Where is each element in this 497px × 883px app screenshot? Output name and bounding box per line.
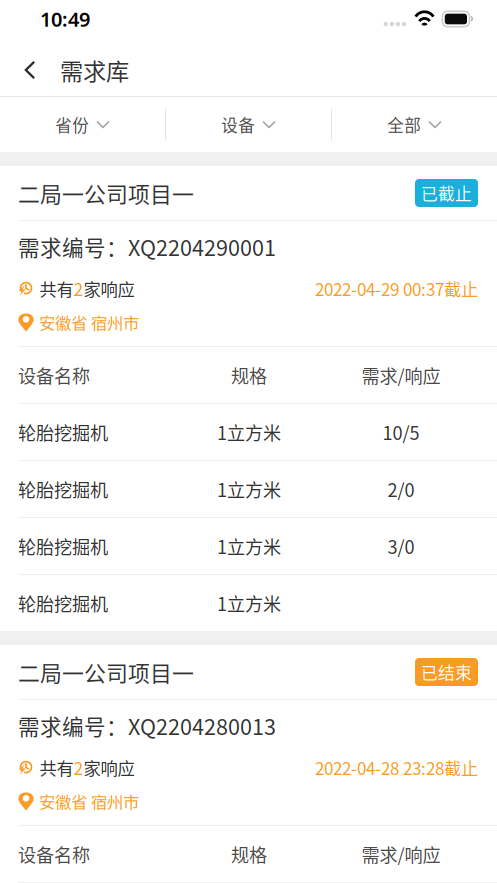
staticText: 设备	[221, 112, 255, 136]
staticText: 需求/响应	[361, 362, 440, 388]
staticText: 1立方米	[217, 476, 281, 502]
staticText: 2	[74, 276, 84, 301]
staticText: 10/5	[382, 419, 419, 445]
staticText: 二局一公司项目一	[18, 656, 194, 688]
staticText: 已截止	[421, 181, 472, 205]
button[interactable]: 全部	[332, 97, 497, 152]
staticText: 家响应	[84, 276, 135, 301]
staticText: 共有	[40, 755, 74, 780]
staticText: 规格	[231, 362, 267, 388]
staticText: 2022-04-29 00:37截止	[315, 276, 478, 301]
staticText: 需求编号：XQ2204280013	[18, 710, 276, 741]
staticText: 2022-04-28 23:28截止	[315, 755, 478, 780]
staticText: 设备名称	[18, 841, 90, 867]
button[interactable]: 二局一公司项目一	[0, 645, 497, 699]
button[interactable]: 二局一公司项目一	[0, 166, 497, 220]
staticText: 规格	[231, 841, 267, 867]
staticText: 需求编号：XQ2204290001	[18, 231, 276, 262]
staticText: 轮胎挖掘机	[18, 590, 108, 616]
staticText: 需求库	[60, 53, 129, 87]
staticText: 需求/响应	[361, 841, 440, 867]
staticText: 1立方米	[217, 419, 281, 445]
staticText: 1立方米	[217, 533, 281, 559]
staticText: 轮胎挖掘机	[18, 419, 108, 445]
staticText: 设备名称	[18, 362, 90, 388]
staticText: 1立方米	[217, 590, 281, 616]
staticText: 已结束	[421, 660, 472, 684]
staticText: 省份	[55, 112, 89, 136]
staticText: 二局一公司项目一	[18, 177, 194, 209]
staticText: 2	[74, 755, 84, 780]
staticText: 10:49	[40, 6, 90, 32]
staticText: 3/0	[387, 533, 414, 559]
button[interactable]: Back	[0, 44, 60, 96]
staticText: 2/0	[387, 476, 414, 502]
button[interactable]: 设备	[166, 97, 331, 152]
staticText: 全部	[387, 112, 421, 136]
button[interactable]: 省份	[0, 97, 165, 152]
staticText: 安徽省 宿州市	[39, 789, 139, 813]
staticText: 轮胎挖掘机	[18, 476, 108, 502]
staticText: 共有	[40, 276, 74, 301]
staticText: 家响应	[84, 755, 135, 780]
staticText: 安徽省 宿州市	[39, 310, 139, 334]
staticText: 轮胎挖掘机	[18, 533, 108, 559]
